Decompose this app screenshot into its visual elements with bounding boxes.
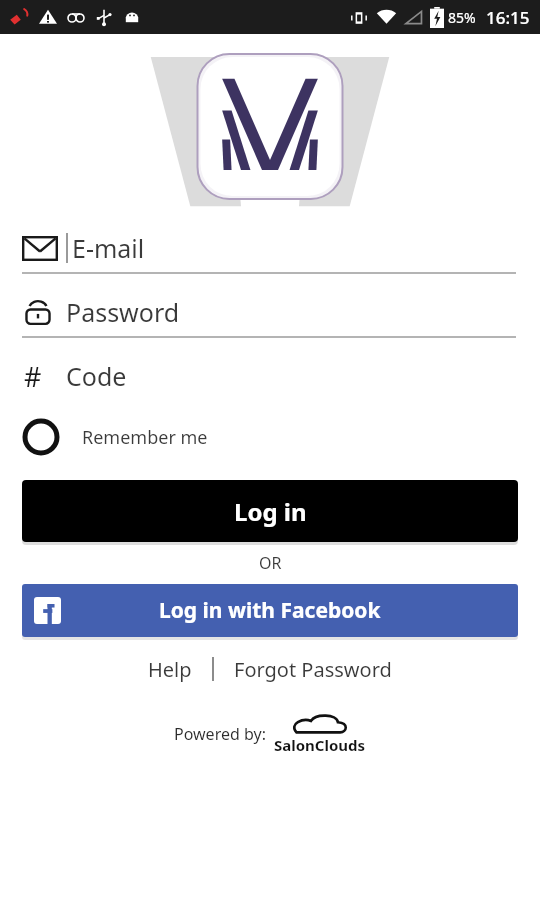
staticText: Help bbox=[148, 656, 192, 683]
staticText: Log in bbox=[234, 495, 307, 528]
button[interactable]: Remember me bbox=[22, 416, 518, 458]
staticText: 16:15 bbox=[486, 6, 530, 29]
button[interactable]: Log in with Facebook bbox=[22, 584, 518, 637]
staticText: # bbox=[24, 358, 42, 395]
staticText: Remember me bbox=[82, 425, 208, 450]
staticText: SalonClouds bbox=[274, 735, 366, 755]
button[interactable]: Forgot Password bbox=[214, 650, 412, 689]
staticText: E-mail bbox=[72, 231, 145, 265]
button[interactable]: # bbox=[22, 352, 518, 400]
button[interactable]: E-mail bbox=[22, 224, 518, 272]
staticText: OR bbox=[259, 552, 282, 574]
staticText: Powered by: bbox=[174, 723, 266, 745]
button[interactable]: Log in bbox=[22, 480, 518, 542]
staticText: 85% bbox=[448, 8, 476, 27]
staticText: Forgot Password bbox=[234, 656, 392, 683]
staticText: Password bbox=[66, 295, 180, 329]
button[interactable]: Help bbox=[128, 650, 212, 689]
staticText: Code bbox=[66, 359, 127, 393]
button[interactable]: Password bbox=[22, 288, 518, 336]
staticText: Log in with Facebook bbox=[159, 596, 381, 625]
